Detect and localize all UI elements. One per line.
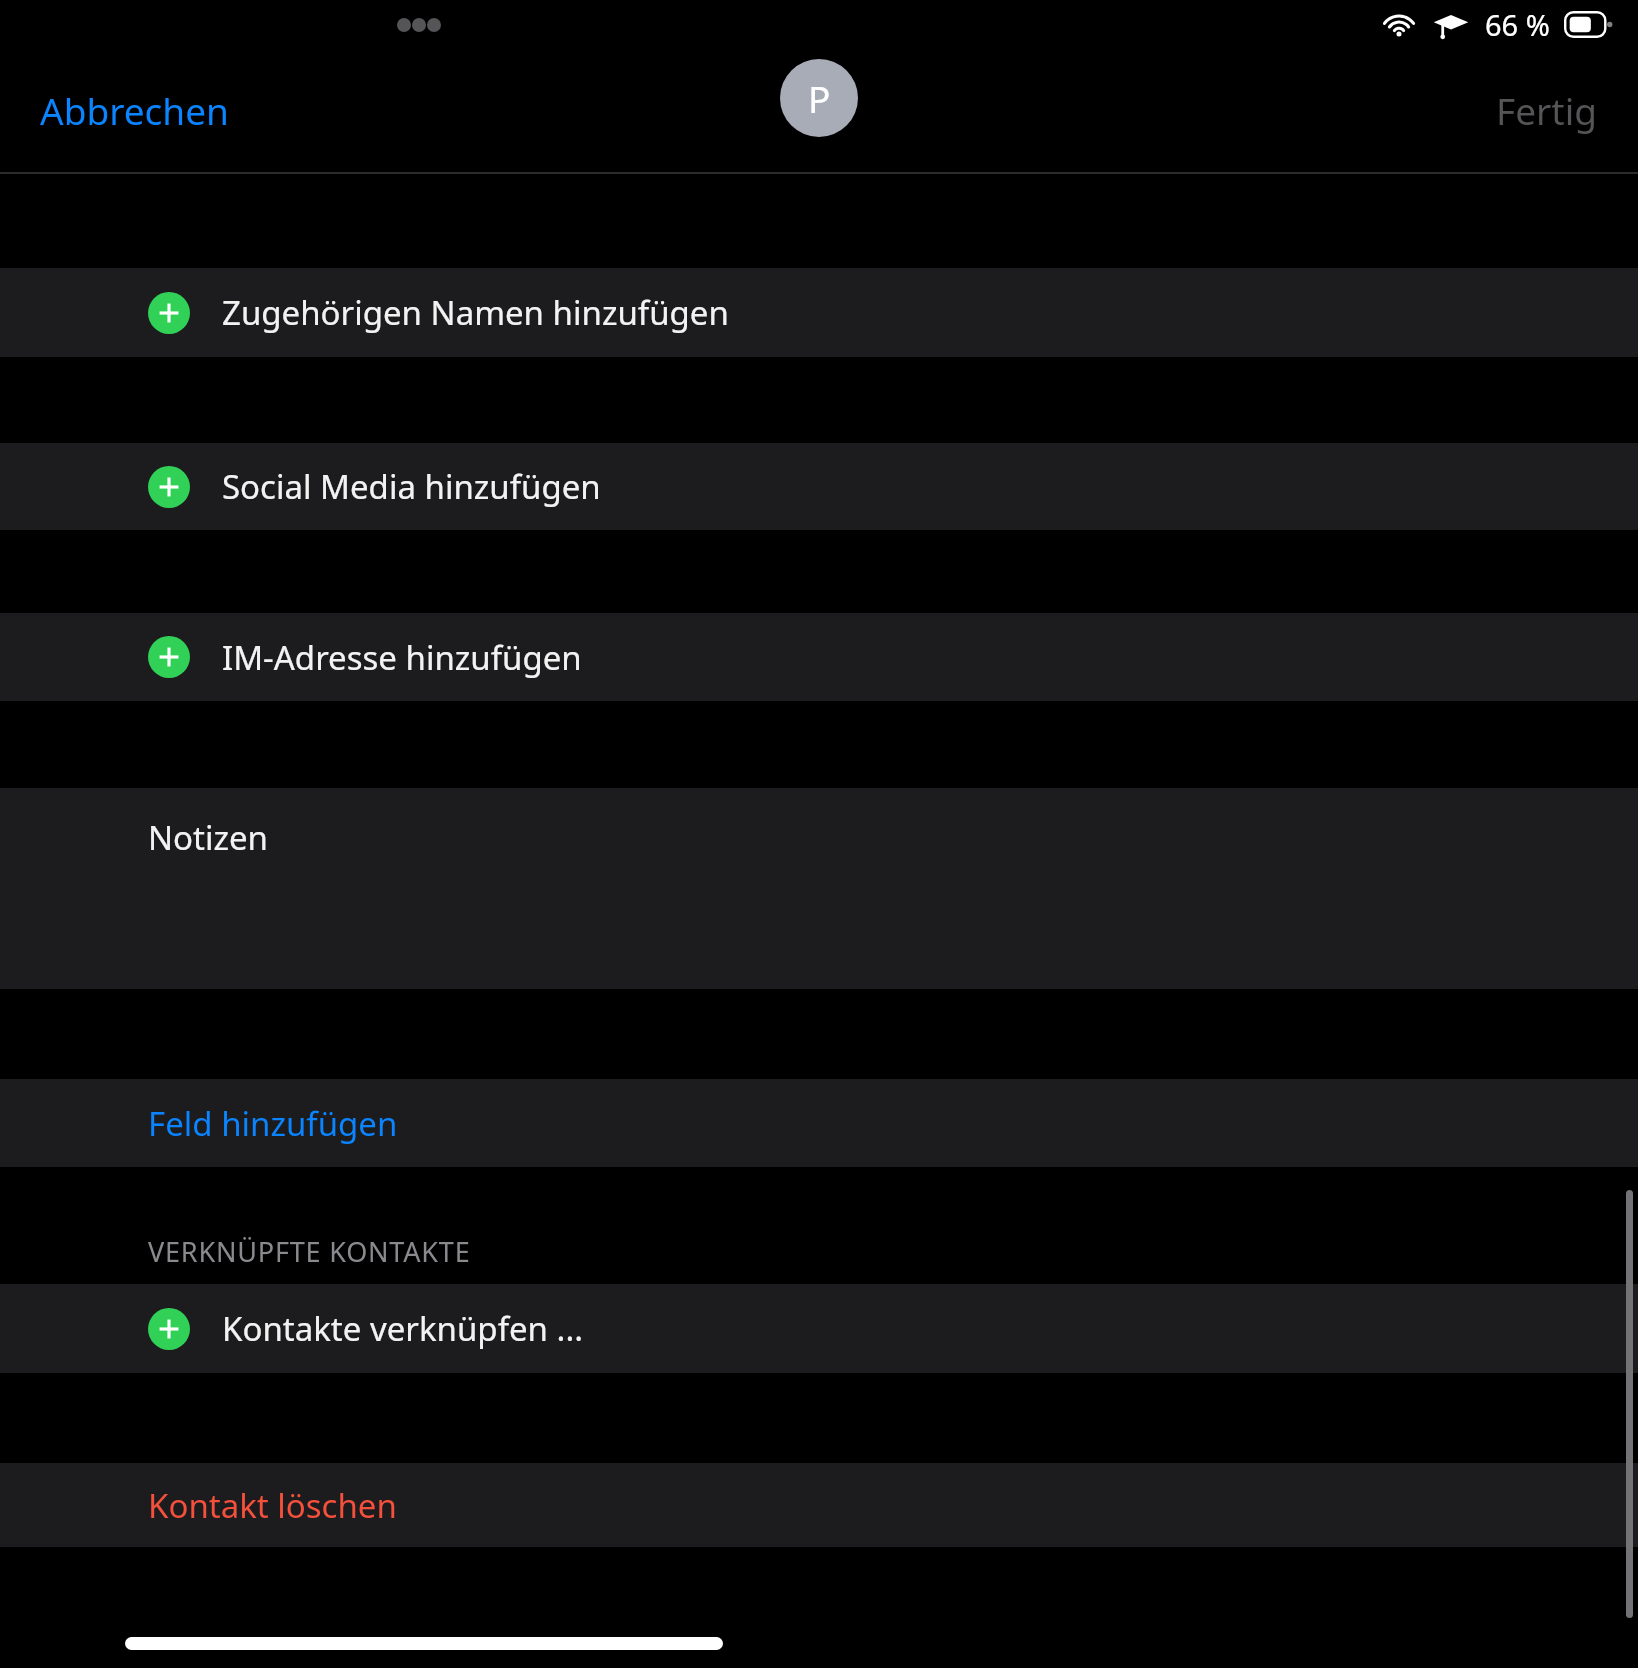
button[interactable]: Kontakte verknüpfen ... [0,1284,1638,1373]
button[interactable]: IM-Adresse hinzufügen [0,613,1638,701]
staticText: IM-Adresse hinzufügen [222,635,582,680]
staticText: P [808,73,831,123]
staticText: 66 % [1485,5,1550,44]
staticText: Kontakte verknüpfen ... [222,1306,584,1351]
button[interactable]: Social Media hinzufügen [0,443,1638,530]
button[interactable]: Notizen [0,788,1638,989]
staticText: Feld hinzufügen [148,1101,398,1146]
staticText: Zugehörigen Namen hinzufügen [222,290,729,335]
staticText: Abbrechen [40,85,229,135]
staticText: Social Media hinzufügen [222,464,601,509]
staticText: Kontakt löschen [148,1483,397,1528]
staticText: Notizen [148,815,268,860]
staticText: VERKNÜPFTE KONTAKTE [148,1233,471,1270]
staticText: Fertig [1496,85,1598,135]
button[interactable]: Abbrechen [40,85,229,135]
button[interactable]: Fertig [1496,85,1598,135]
button[interactable]: Zugehörigen Namen hinzufügen [0,268,1638,357]
button[interactable]: Kontakt löschen [0,1463,1638,1547]
button[interactable]: Feld hinzufügen [0,1079,1638,1167]
button[interactable]: Kontaktbild [780,59,858,137]
